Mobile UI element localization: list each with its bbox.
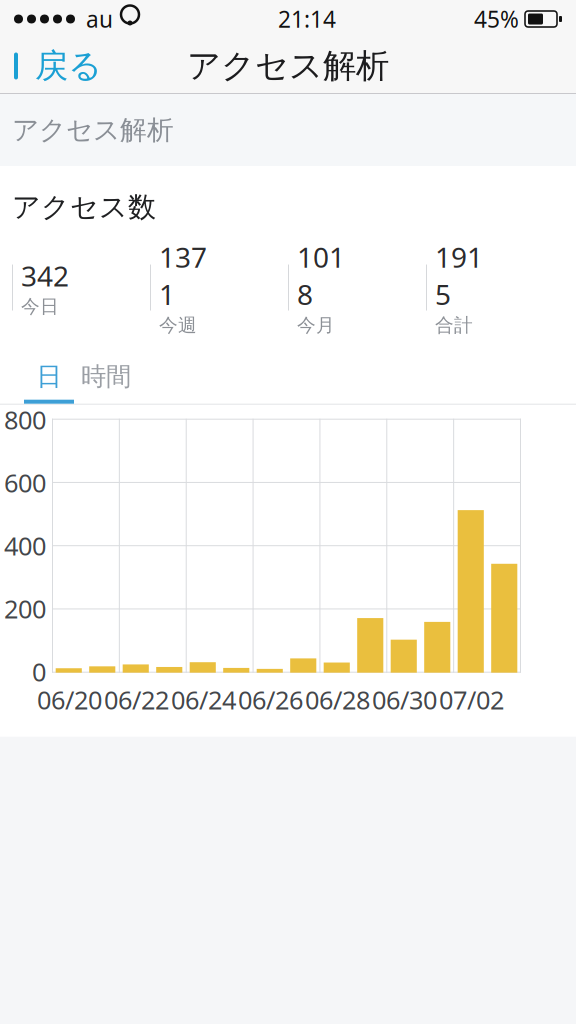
button[interactable]: 戻る: [0, 38, 116, 94]
staticText: 800: [4, 403, 46, 436]
staticText: 400: [4, 529, 46, 562]
staticText: 06/24: [171, 683, 236, 716]
staticText: アクセス解析: [12, 114, 174, 146]
button[interactable]: 日: [24, 361, 74, 393]
staticText: 今週: [159, 314, 197, 337]
staticText: 戻る: [35, 45, 102, 86]
staticText: 今日: [21, 295, 59, 318]
staticText: アクセス解析: [187, 45, 389, 86]
staticText: 時間: [81, 361, 131, 392]
staticText: 21:14: [278, 4, 336, 34]
staticText: 200: [4, 592, 46, 625]
staticText: 06/28: [305, 683, 370, 716]
staticText: au: [86, 4, 113, 34]
button[interactable]: 時間: [74, 361, 138, 393]
staticText: 合計: [435, 314, 473, 337]
staticText: 1915: [435, 238, 483, 313]
staticText: 342: [21, 257, 69, 294]
staticText: 0: [32, 655, 46, 688]
staticText: 日: [36, 361, 61, 392]
staticText: 45%: [474, 4, 519, 34]
staticText: 600: [4, 466, 46, 499]
staticText: 1371: [159, 238, 207, 313]
staticText: 07/02: [439, 683, 504, 716]
staticText: 今月: [297, 314, 335, 337]
staticText: 06/22: [104, 683, 169, 716]
staticText: 06/30: [372, 683, 437, 716]
staticText: 06/20: [37, 683, 102, 716]
staticText: 06/26: [238, 683, 303, 716]
staticText: 1018: [297, 238, 345, 313]
staticText: アクセス数: [12, 190, 156, 224]
